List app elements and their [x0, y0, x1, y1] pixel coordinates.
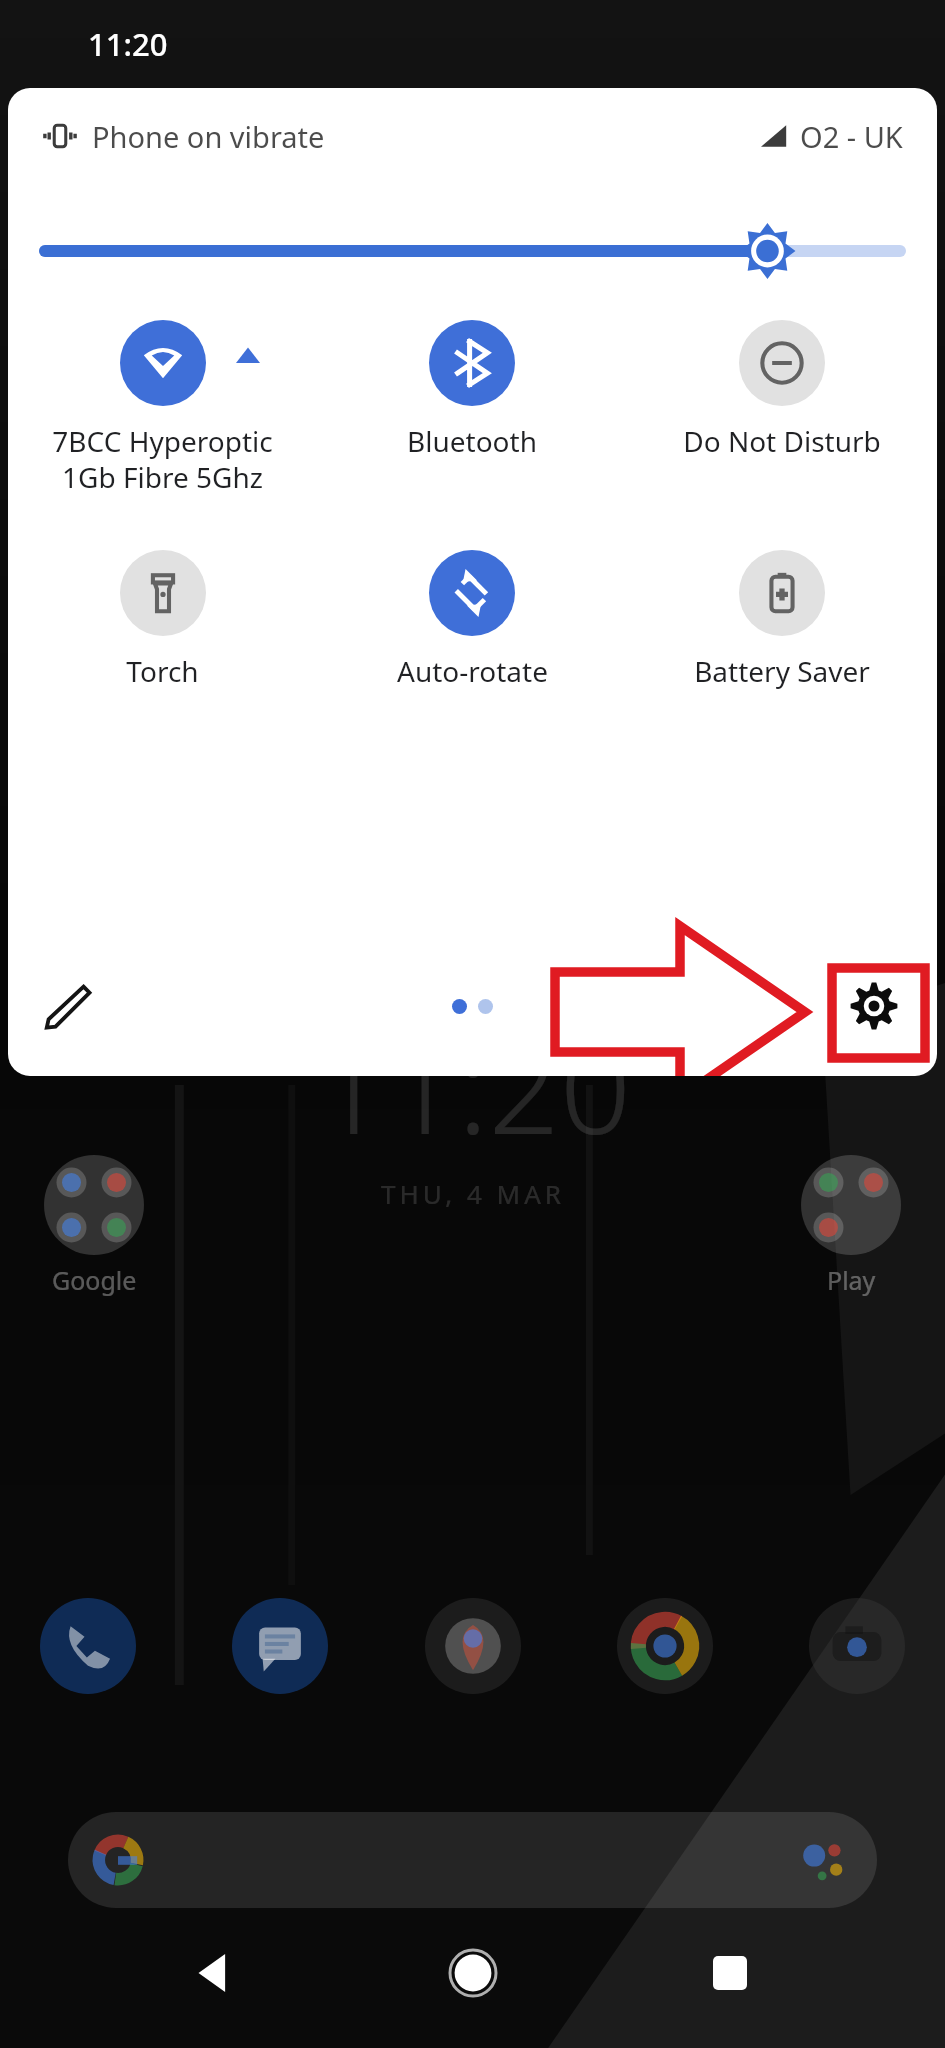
staticText: Play — [827, 1263, 876, 1297]
button[interactable]: Auto-rotate — [317, 546, 627, 694]
button[interactable]: Camera — [809, 1598, 905, 1694]
button[interactable]: Torch — [8, 546, 317, 694]
button[interactable]: Home — [431, 1931, 515, 2015]
button[interactable]: 7BCC Hyperoptic 1Gb Fibre 5Ghz — [8, 316, 317, 500]
staticText: Do Not Disturb — [683, 422, 881, 460]
staticText: Phone on vibrate — [92, 117, 325, 156]
button[interactable]: Maps — [425, 1598, 521, 1694]
button[interactable]: Recent apps — [688, 1931, 772, 2015]
button[interactable]: Settings — [833, 965, 915, 1047]
button[interactable]: Brightness — [8, 216, 937, 286]
staticText: Battery Saver — [694, 652, 870, 690]
staticText: 7BCC Hyperoptic 1Gb Fibre 5Ghz — [52, 422, 273, 496]
staticText: Auto-rotate — [397, 652, 548, 690]
button[interactable]: Bluetooth — [317, 316, 627, 464]
button[interactable]: Phone — [40, 1598, 136, 1694]
button[interactable]: Google folder — [44, 1155, 144, 1255]
button[interactable]: Google search — [68, 1812, 877, 1908]
staticText: Google — [52, 1263, 137, 1297]
button[interactable]: Do Not Disturb — [627, 316, 937, 464]
button[interactable]: Play folder — [801, 1155, 901, 1255]
staticText: 11:20 — [88, 23, 168, 65]
button[interactable]: Chrome — [617, 1598, 713, 1694]
staticText: THU, 4 MAR — [381, 1176, 565, 1211]
button[interactable]: Messages — [232, 1598, 328, 1694]
button[interactable]: Back — [174, 1931, 258, 2015]
staticText: O2 - UK — [800, 117, 903, 156]
button[interactable]: Edit tiles — [30, 969, 104, 1043]
button[interactable]: Battery Saver — [627, 546, 937, 694]
staticText: Bluetooth — [407, 422, 537, 460]
staticText: Torch — [126, 652, 199, 690]
staticText: 11:20 — [315, 1000, 631, 1170]
